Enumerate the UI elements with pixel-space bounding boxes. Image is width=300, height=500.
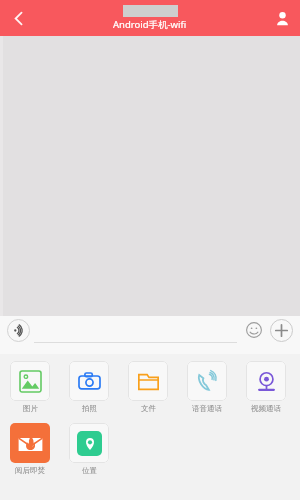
button[interactable]: Voice message (4, 316, 32, 344)
button[interactable] (34, 317, 237, 343)
staticText: 拍照 (82, 404, 97, 413)
staticText: 文件 (141, 404, 156, 413)
button[interactable]: 拍照 (69, 361, 109, 413)
button[interactable]: Emoji (241, 317, 267, 343)
button[interactable]: 语音通话 (187, 361, 227, 413)
button[interactable]: 文件 (128, 361, 168, 413)
staticText: 图片 (23, 404, 38, 413)
button[interactable]: Contact info (264, 0, 300, 36)
staticText: 阅后即焚 (15, 466, 45, 475)
button[interactable]: 视频通话 (246, 361, 286, 413)
button[interactable]: 位置 (69, 423, 109, 475)
staticText: 位置 (82, 466, 97, 475)
button[interactable]: 图片 (10, 361, 50, 413)
staticText: Android手机-wifi (113, 18, 187, 31)
button[interactable]: Back (0, 0, 36, 36)
button[interactable]: 阅后即焚 (10, 423, 50, 475)
button[interactable]: More options (267, 316, 295, 344)
staticText: 视频通话 (251, 404, 281, 413)
staticText: 语音通话 (192, 404, 222, 413)
